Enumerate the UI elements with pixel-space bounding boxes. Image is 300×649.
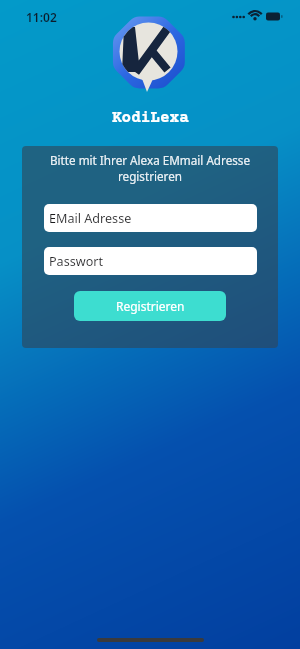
staticText: KodiLexa [112,109,189,127]
button[interactable]: Passwort [44,247,257,275]
staticText: Bitte mit Ihrer Alexa EMmail Adresse reg… [44,152,256,184]
staticText: EMail Adresse [49,210,132,227]
staticText: Passwort [49,253,104,270]
staticText: Registrieren [116,298,185,314]
button[interactable]: Registrieren [74,291,226,321]
button[interactable]: EMail Adresse [44,204,257,232]
staticText: 11:02 [26,9,57,25]
